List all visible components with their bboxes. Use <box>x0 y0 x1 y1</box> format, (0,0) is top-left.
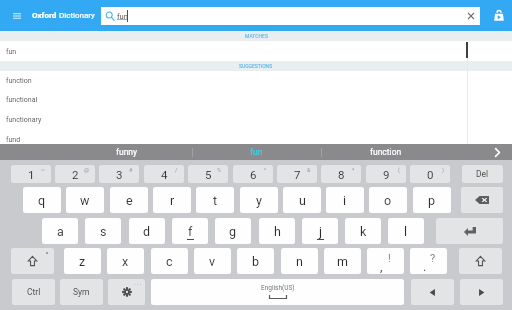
button[interactable]: 8 <box>321 165 361 183</box>
button[interactable]: p <box>413 187 451 213</box>
button[interactable]: f <box>172 218 208 244</box>
button[interactable]: e <box>110 187 148 213</box>
button[interactable]: Cursor left <box>411 279 454 305</box>
button[interactable]: n <box>281 248 318 274</box>
staticText: q <box>38 193 46 208</box>
staticText: s <box>100 224 107 239</box>
staticText: 9 <box>383 168 390 181</box>
button[interactable]: . <box>410 248 447 274</box>
button[interactable]: Cursor right <box>460 279 503 305</box>
staticText: x <box>122 254 129 269</box>
button[interactable]: Backspace <box>461 187 503 213</box>
button[interactable]: Keyboard settings <box>108 279 145 305</box>
button[interactable]: 2 <box>55 165 95 183</box>
staticText: MATCHES <box>245 33 268 39</box>
button[interactable]: r <box>153 187 191 213</box>
staticText: w <box>80 193 90 208</box>
staticText: SUGGESTIONS <box>239 63 273 69</box>
staticText: e <box>126 193 133 208</box>
staticText: 0 <box>427 168 434 181</box>
button[interactable]: j <box>302 218 338 244</box>
button[interactable]: i <box>326 187 364 213</box>
button[interactable]: 7 <box>277 165 317 183</box>
staticText: . <box>423 259 427 274</box>
button[interactable]: z <box>64 248 101 274</box>
button[interactable]: fun <box>211 144 301 160</box>
staticText: 8 <box>338 168 345 181</box>
button[interactable]: fun <box>0 42 512 62</box>
button[interactable]: , <box>367 248 404 274</box>
staticText: fund <box>6 136 21 144</box>
button[interactable]: t <box>196 187 234 213</box>
button[interactable]: More suggestions <box>478 144 512 160</box>
staticText: n <box>296 254 303 269</box>
staticText: Dictionary <box>59 11 95 20</box>
staticText: Del <box>476 169 489 179</box>
button[interactable]: s <box>85 218 121 244</box>
staticText: 2 <box>72 168 79 181</box>
button[interactable]: function <box>341 144 431 160</box>
staticText: ? <box>430 252 436 265</box>
button[interactable]: fund <box>0 130 512 150</box>
button[interactable]: Open navigation drawer <box>8 7 26 25</box>
staticText: @ <box>84 167 89 173</box>
button[interactable]: 0 <box>410 165 450 183</box>
button[interactable]: g <box>215 218 251 244</box>
staticText: function <box>370 147 402 157</box>
staticText: c <box>166 254 173 269</box>
staticText: j <box>319 224 322 239</box>
button[interactable]: 5 <box>188 165 228 183</box>
button[interactable]: h <box>259 218 295 244</box>
button[interactable]: Del <box>462 165 503 183</box>
staticText: # <box>129 167 133 173</box>
button[interactable]: 1 <box>11 165 51 183</box>
staticText: z <box>79 254 86 269</box>
staticText: funny <box>116 147 138 157</box>
button[interactable]: c <box>151 248 188 274</box>
button[interactable]: funny <box>82 144 172 160</box>
button[interactable]: Enter <box>436 218 503 244</box>
staticText: Ctrl <box>27 287 41 297</box>
button[interactable]: fun <box>101 7 480 25</box>
staticText: m <box>337 254 348 269</box>
button[interactable]: o <box>369 187 407 213</box>
button[interactable]: a <box>42 218 78 244</box>
staticText: ! <box>388 252 391 265</box>
button[interactable]: d <box>129 218 165 244</box>
button[interactable]: Play Store <box>491 7 507 23</box>
button[interactable]: v <box>194 248 231 274</box>
staticText: v <box>209 254 216 269</box>
button[interactable]: l <box>388 218 424 244</box>
button[interactable]: functionary <box>0 110 512 130</box>
staticText: ~ <box>41 167 45 173</box>
button[interactable]: Sym <box>60 279 103 305</box>
button[interactable]: Ctrl <box>12 279 55 305</box>
staticText: & <box>307 167 311 173</box>
staticText: · · · <box>134 280 142 287</box>
button[interactable]: function <box>0 71 512 91</box>
button[interactable]: y <box>240 187 278 213</box>
button[interactable]: 9 <box>366 165 406 183</box>
staticText: functional <box>6 96 38 104</box>
staticText: g <box>229 224 237 239</box>
staticText: 5 <box>205 168 212 181</box>
staticText: Oxford <box>32 11 59 20</box>
button[interactable]: u <box>283 187 321 213</box>
staticText: 1 <box>28 168 35 181</box>
staticText: b <box>252 254 260 269</box>
button[interactable]: Clear search <box>464 9 478 23</box>
button[interactable]: x <box>107 248 144 274</box>
button[interactable]: w <box>66 187 104 213</box>
button[interactable]: functional <box>0 90 512 110</box>
button[interactable]: 3 <box>99 165 139 183</box>
button[interactable]: m <box>324 248 361 274</box>
button[interactable]: q <box>23 187 61 213</box>
button[interactable]: b <box>237 248 274 274</box>
button[interactable]: 6 <box>233 165 273 183</box>
button[interactable]: k <box>345 218 381 244</box>
button[interactable]: English(US) <box>151 279 404 305</box>
button[interactable]: Shift <box>459 248 502 274</box>
button[interactable]: Shift <box>11 248 54 274</box>
staticText: d <box>143 224 151 239</box>
button[interactable]: 4 <box>144 165 184 183</box>
